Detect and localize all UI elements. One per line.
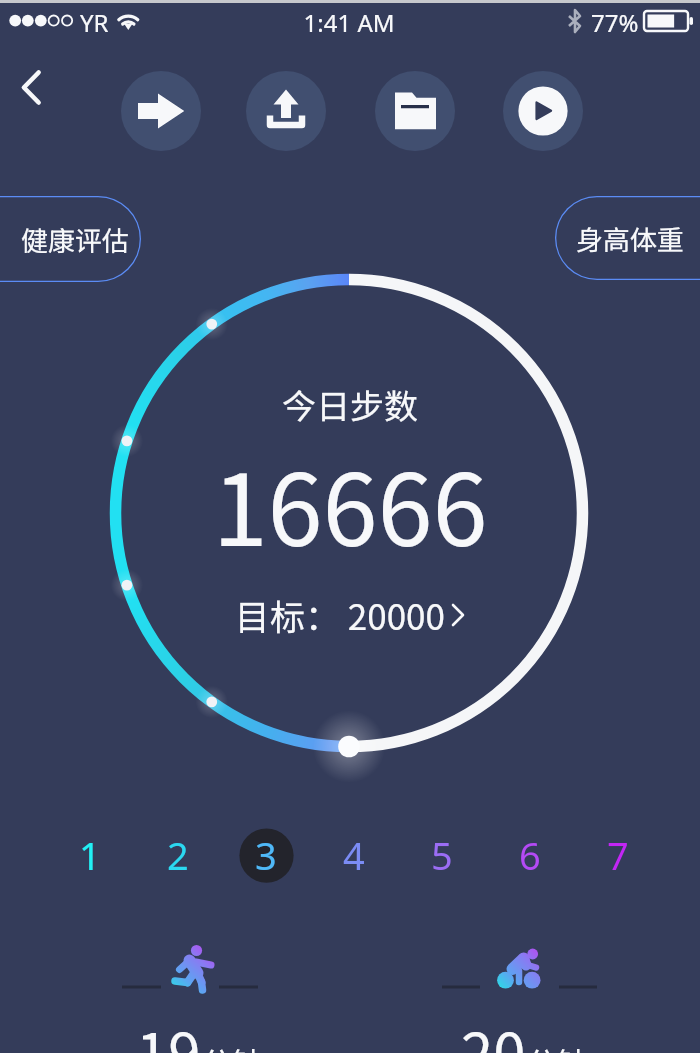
staticText: 5 [431, 829, 453, 881]
staticText: YR [80, 6, 109, 39]
button[interactable]: Play [503, 71, 583, 151]
staticText: 16666 [0, 431, 700, 574]
button[interactable]: Upload [246, 71, 326, 151]
staticText: 3 [255, 829, 277, 881]
staticText: 2 [167, 829, 189, 881]
staticText: 身高体重 [576, 219, 684, 258]
button[interactable]: 身高体重 [555, 196, 700, 280]
staticText: 1:41 AM [0, 6, 699, 39]
staticText: 1 [79, 829, 101, 881]
button[interactable]: Next [121, 71, 201, 151]
button[interactable]: 6 [502, 827, 558, 883]
button[interactable]: 健康评估 [0, 196, 141, 282]
staticText: 分钟 [201, 1039, 263, 1053]
button[interactable]: 4 [326, 827, 382, 883]
staticText: 4 [343, 829, 365, 881]
staticText: 目标： 20000 [235, 589, 445, 640]
staticText: 今日步数 [0, 380, 700, 429]
button[interactable]: Back [4, 64, 52, 112]
staticText: 6 [519, 829, 541, 881]
staticText: 19 [136, 1008, 201, 1053]
button[interactable]: 3 [238, 827, 294, 883]
staticText: 7 [607, 829, 629, 881]
staticText: 分钟 [526, 1039, 588, 1053]
button[interactable]: 2 [150, 827, 206, 883]
button[interactable]: 7 [590, 827, 646, 883]
staticText: 健康评估 [21, 220, 129, 259]
staticText: 77% [591, 6, 639, 39]
button[interactable]: 1 [62, 827, 118, 883]
button[interactable]: 5 [414, 827, 470, 883]
staticText: 20 [461, 1008, 526, 1053]
button[interactable]: Files [375, 71, 455, 151]
